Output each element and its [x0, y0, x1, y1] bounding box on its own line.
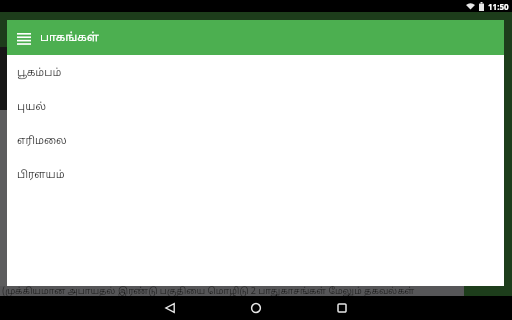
- button[interactable]: (முக்கியமான அபாயதல் இரண்டு பகுதியை மொழிட…: [0, 286, 464, 296]
- button[interactable]: புயல்: [7, 89, 504, 123]
- staticText: பாகங்கள்: [40, 31, 100, 45]
- staticText: புயல்: [17, 101, 46, 114]
- button[interactable]: [12, 26, 36, 50]
- button[interactable]: [330, 296, 354, 320]
- button[interactable]: [244, 296, 268, 320]
- staticText: பிரளயம்: [17, 169, 65, 182]
- button[interactable]: பிரளயம்: [7, 157, 504, 191]
- button[interactable]: [158, 296, 182, 320]
- staticText: (முக்கியமான அபாயதல் இரண்டு பகுதியை மொழிட…: [2, 286, 415, 296]
- staticText: எரிமலை: [17, 135, 67, 148]
- button[interactable]: எரிமலை: [7, 123, 504, 157]
- staticText: 11:50: [488, 1, 509, 12]
- button[interactable]: பூகம்பம்: [7, 55, 504, 89]
- staticText: பூகம்பம்: [17, 67, 62, 80]
